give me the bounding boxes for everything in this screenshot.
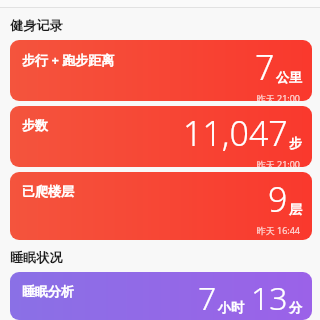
staticText: 昨天 16:44 [256,224,300,236]
staticText: 13 [251,276,288,320]
staticText: 9 [268,176,288,222]
staticText: 7 [198,276,217,320]
staticText: 健身记录 [10,17,63,33]
button[interactable]: 步行 + 跑步距离 [10,40,312,101]
button[interactable]: 步数 [10,106,312,167]
staticText: 分 [289,299,302,315]
staticText: 步数 [22,117,48,133]
staticText: 已爬楼层 [22,183,74,199]
staticText: 步行 + 跑步距离 [22,51,115,69]
staticText: 小时 [218,299,244,315]
staticText: 睡眠分析 [22,283,74,299]
staticText: 公里 [276,69,302,85]
button[interactable]: 睡眠分析 [10,272,312,320]
staticText: 层 [289,201,302,217]
staticText: 昨天 21:00 [256,158,300,167]
button[interactable]: 已爬楼层 [10,172,312,240]
staticText: 步 [289,135,302,151]
staticText: 11,047 [183,110,288,156]
staticText: 睡眠状况 [10,249,63,265]
staticText: 昨天 21:00 [256,92,300,101]
staticText: 7 [255,44,275,90]
